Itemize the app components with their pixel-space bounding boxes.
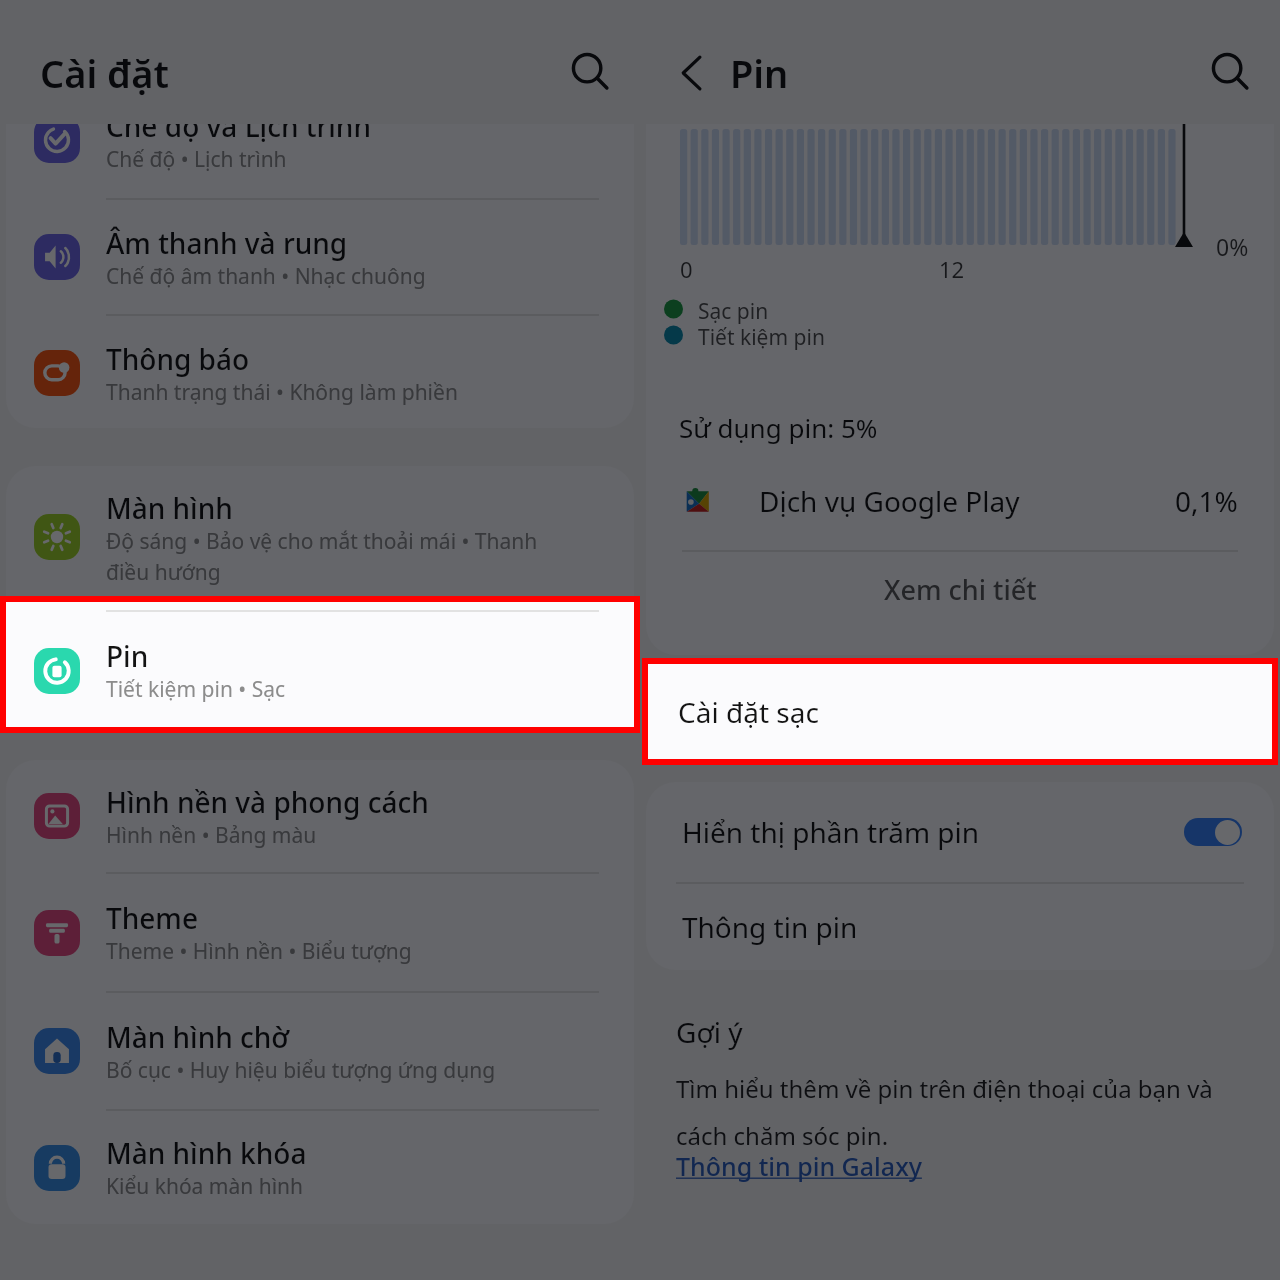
button[interactable]: Theme <box>6 874 634 991</box>
staticText: Cài đặt sạc <box>678 693 819 731</box>
button[interactable]: Pin <box>6 610 634 729</box>
staticText: Tiết kiệm pin • Sạc <box>106 674 286 703</box>
staticText: Thông báo <box>106 340 250 378</box>
staticText: Âm thanh và rung <box>106 224 348 262</box>
staticText: Hiển thị phần trăm pin <box>682 813 980 851</box>
staticText: Bố cục • Huy hiệu biểu tượng ứng dụng <box>106 1056 496 1085</box>
staticText: Theme <box>106 899 198 937</box>
button[interactable]: Cài đặt sạc <box>646 667 1274 764</box>
button[interactable]: Xem chi tiết <box>646 551 1274 628</box>
staticText: Màn hình chờ <box>106 1018 290 1056</box>
staticText: Gợi ý <box>676 1013 743 1051</box>
button[interactable]: Thông báo <box>6 316 634 428</box>
staticText: Xem chi tiết <box>884 571 1037 608</box>
button[interactable]: Search <box>1204 47 1256 99</box>
button[interactable]: Cài đặt sạc <box>648 664 1272 759</box>
staticText: Thông tin pin <box>682 908 858 946</box>
button[interactable]: Màn hình khóa <box>6 1109 634 1224</box>
staticText: Tìm hiểu thêm về pin trên điện thoại của… <box>676 1072 1261 1152</box>
staticText: Màn hình khóa <box>106 1134 307 1172</box>
staticText: Màn hình <box>106 489 233 527</box>
staticText: 0,1% <box>1175 482 1238 520</box>
staticText: Tiết kiệm pin <box>698 323 825 352</box>
staticText: 0% <box>1216 231 1249 262</box>
button[interactable]: Màn hình <box>6 466 634 608</box>
staticText: Độ sáng • Bảo vệ cho mắt thoải mái • Tha… <box>106 527 561 586</box>
staticText: Sạc pin <box>698 297 769 326</box>
staticText: Pin <box>106 637 149 675</box>
staticText: Sử dụng pin: 5% <box>679 410 878 445</box>
staticText: Pin <box>730 47 789 99</box>
button[interactable]: Âm thanh và rung <box>6 200 634 314</box>
button[interactable]: Hiển thị phần trăm pin <box>646 782 1274 882</box>
staticText: Cài đặt sạc <box>682 696 823 734</box>
button[interactable]: Search <box>564 47 616 99</box>
staticText: Thông tin pin Galaxy <box>676 1149 922 1183</box>
button[interactable]: Back <box>666 47 718 99</box>
staticText: 12 <box>939 254 965 284</box>
staticText: Pin <box>106 636 149 674</box>
staticText: Cài đặt <box>40 47 169 99</box>
button[interactable]: Màn hình chờ <box>6 993 634 1109</box>
button[interactable]: Thông tin pin Galaxy <box>676 1149 922 1183</box>
button[interactable]: Pin <box>0 602 634 727</box>
staticText: Hình nền và phong cách <box>106 783 429 821</box>
button[interactable]: Hình nền và phong cách <box>6 760 634 872</box>
staticText: Theme • Hình nền • Biểu tượng <box>106 937 412 966</box>
staticText: Chế độ âm thanh • Nhạc chuông <box>106 262 426 291</box>
staticText: 0 <box>680 254 693 284</box>
button[interactable]: Dịch vụ Google Play <box>646 447 1274 554</box>
button[interactable]: Chế độ và Lịch trình <box>6 82 634 198</box>
staticText: Dịch vụ Google Play <box>759 482 1020 520</box>
staticText: Hình nền • Bảng màu <box>106 821 317 850</box>
staticText: Chế độ và Lịch trình <box>106 107 371 145</box>
button[interactable]: Thông tin pin <box>646 883 1274 970</box>
staticText: Kiểu khóa màn hình <box>106 1172 304 1201</box>
staticText: Chế độ • Lịch trình <box>106 145 287 174</box>
staticText: Tiết kiệm pin • Sạc <box>106 675 286 704</box>
staticText: Thanh trạng thái • Không làm phiền <box>106 378 458 407</box>
